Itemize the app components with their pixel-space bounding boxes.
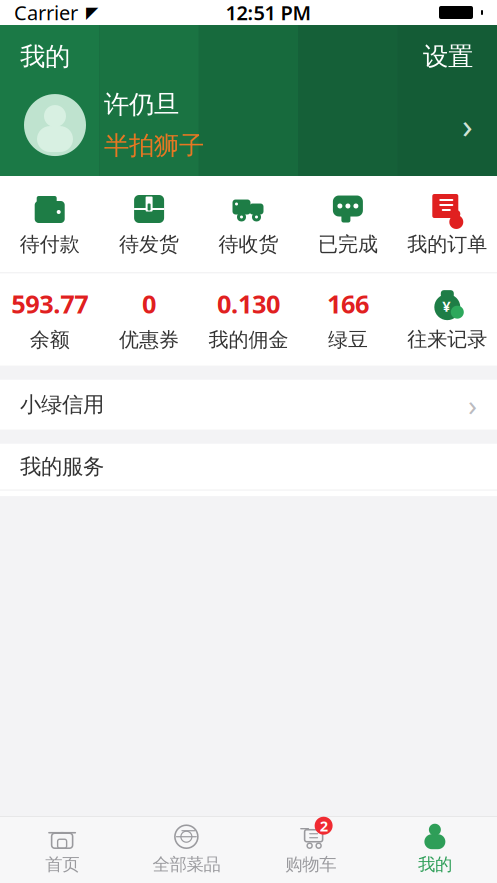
button[interactable]: 小绿信用 bbox=[0, 380, 497, 430]
staticText: 许仍旦 bbox=[104, 89, 179, 120]
staticText: 往来记录 bbox=[407, 327, 487, 352]
staticText: 已完成 bbox=[318, 232, 378, 257]
staticText: 我的订单 bbox=[407, 232, 487, 257]
staticText: 余额 bbox=[30, 327, 70, 352]
button[interactable]: 全部菜品 bbox=[124, 823, 248, 875]
staticText: ◤ bbox=[86, 3, 98, 22]
button[interactable]: 待收货 bbox=[199, 184, 298, 265]
staticText: 593.77 bbox=[11, 287, 88, 320]
staticText: Carrier bbox=[14, 0, 78, 26]
staticText: 待发货 bbox=[119, 232, 179, 257]
staticText: 2 bbox=[320, 816, 328, 835]
staticText: 全部菜品 bbox=[152, 854, 220, 875]
staticText: 0.130 bbox=[217, 287, 280, 320]
staticText: 166 bbox=[327, 287, 369, 320]
button[interactable]: 593.77 bbox=[0, 281, 99, 358]
button[interactable]: 我的订单 bbox=[398, 184, 497, 265]
staticText: 购物车 bbox=[285, 854, 336, 875]
staticText: 我的 bbox=[418, 854, 452, 875]
staticText: 优惠券 bbox=[119, 327, 179, 352]
staticText: 首页 bbox=[45, 854, 79, 875]
staticText: 待付款 bbox=[20, 232, 80, 257]
staticText: 小绿信用 bbox=[20, 392, 104, 418]
button[interactable]: 我的 bbox=[373, 823, 497, 875]
staticText: 绿豆 bbox=[328, 327, 368, 352]
staticText: 0 bbox=[142, 287, 156, 320]
button[interactable]: 待付款 bbox=[0, 184, 99, 265]
staticText: 我的 bbox=[20, 41, 70, 72]
staticText: 待收货 bbox=[218, 232, 278, 257]
staticText: 我的服务 bbox=[20, 454, 104, 480]
button[interactable]: 166 bbox=[298, 281, 398, 358]
staticText: 我的佣金 bbox=[208, 327, 288, 352]
button[interactable]: 设置 bbox=[419, 39, 477, 74]
button[interactable]: 已完成 bbox=[298, 184, 398, 265]
staticText: › bbox=[468, 385, 477, 424]
staticText: ¥ bbox=[442, 296, 450, 316]
button[interactable]: 许仍旦 bbox=[0, 89, 497, 161]
button[interactable]: 待发货 bbox=[99, 184, 199, 265]
button[interactable]: 0.130 bbox=[199, 281, 298, 358]
button[interactable]: 首页 bbox=[0, 823, 124, 875]
staticText: 半拍狮子 bbox=[104, 130, 204, 161]
button[interactable]: 2 bbox=[248, 823, 373, 875]
button[interactable]: 0 bbox=[99, 281, 199, 358]
staticText: › bbox=[462, 102, 473, 148]
staticText: 设置 bbox=[423, 41, 473, 72]
staticText: 12:51 PM bbox=[225, 0, 311, 26]
button[interactable]: ¥ bbox=[398, 279, 497, 360]
